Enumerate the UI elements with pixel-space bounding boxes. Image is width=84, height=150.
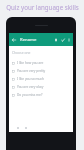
- button[interactable]: Back: [15, 125, 21, 131]
- staticText: Rename: [20, 37, 37, 43]
- button[interactable]: Bookmark: [52, 36, 59, 43]
- staticText: I like how you are: [17, 61, 44, 65]
- staticText: You are very pretty: [17, 69, 46, 73]
- staticText: Quiz your language skills: [6, 3, 79, 11]
- button[interactable]: You are very pretty: [9, 67, 73, 75]
- button[interactable]: I like how you are: [9, 59, 73, 67]
- staticText: You are very okay: [17, 85, 44, 89]
- button[interactable]: I like you so much: [9, 75, 73, 83]
- button[interactable]: You are very okay: [9, 83, 73, 91]
- button[interactable]: Back: [10, 36, 18, 44]
- staticText: I like you so much: [17, 77, 44, 81]
- staticText: Choose one: [12, 50, 31, 54]
- button[interactable]: Home: [23, 125, 29, 131]
- button[interactable]: Do you miss me?: [9, 91, 73, 99]
- button[interactable]: More options: [66, 37, 72, 43]
- button[interactable]: Done: [59, 36, 66, 43]
- staticText: Do you miss me?: [17, 93, 43, 97]
